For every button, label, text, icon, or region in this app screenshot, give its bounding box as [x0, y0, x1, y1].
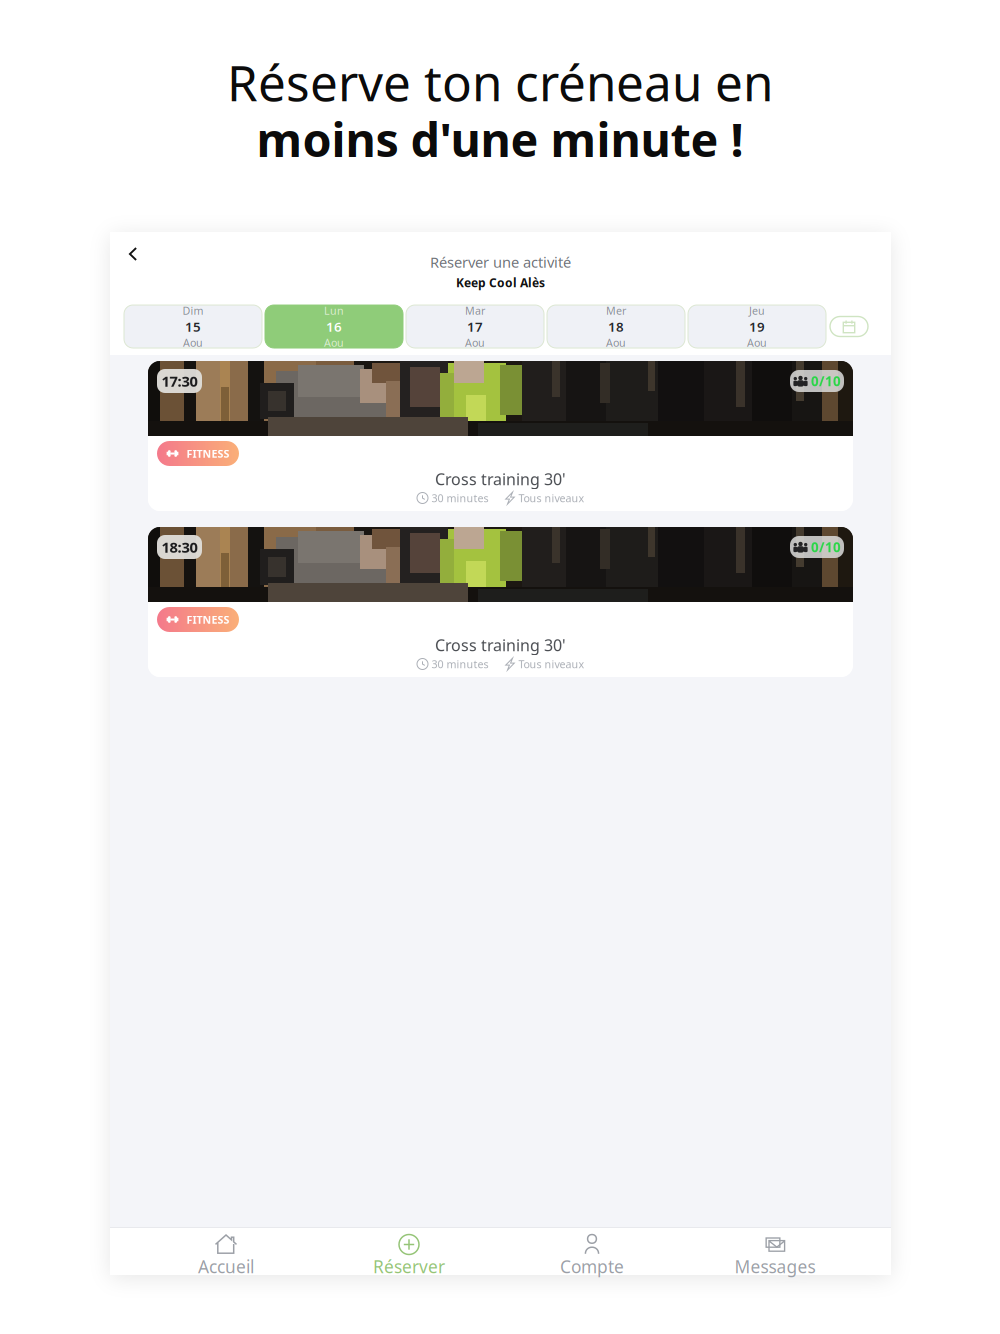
staticText: Aou: [465, 335, 485, 350]
button[interactable]: Dim: [124, 305, 262, 348]
button[interactable]: Back: [116, 237, 150, 271]
button[interactable]: Jeu: [688, 305, 826, 348]
staticText: Tous niveaux: [515, 657, 584, 671]
staticText: Cross training 30': [435, 468, 566, 490]
button[interactable]: Compte: [500, 1228, 683, 1275]
staticText: 17: [467, 318, 483, 335]
button[interactable]: Mer: [547, 305, 685, 348]
staticText: 0/10: [811, 538, 841, 556]
staticText: Lun: [324, 303, 344, 318]
staticText: Dim: [182, 303, 203, 318]
button[interactable]: Messages: [683, 1228, 866, 1275]
staticText: Mar: [465, 303, 485, 318]
staticText: 17:30: [161, 371, 197, 391]
staticText: 30 minutes: [428, 657, 488, 671]
button[interactable]: Réserver: [317, 1228, 500, 1275]
staticText: 15: [185, 318, 201, 335]
staticText: Tous niveaux: [515, 491, 584, 505]
staticText: Aou: [324, 335, 344, 350]
staticText: Réserve ton créneau en: [227, 49, 773, 115]
staticText: Keep Cool Alès: [456, 274, 545, 290]
staticText: Aou: [747, 335, 767, 350]
staticText: Accueil: [198, 1255, 254, 1278]
staticText: 30 minutes: [428, 491, 488, 505]
staticText: Jeu: [749, 303, 765, 318]
staticText: 18:30: [161, 537, 197, 557]
button[interactable]: Mar: [406, 305, 544, 348]
staticText: Réserver: [373, 1255, 445, 1278]
staticText: 19: [749, 318, 765, 335]
button[interactable]: 17:30: [148, 361, 853, 511]
staticText: Compte: [560, 1255, 624, 1278]
button[interactable]: 18:30: [148, 527, 853, 677]
staticText: 16: [326, 318, 342, 335]
staticText: Cross training 30': [435, 634, 566, 656]
button[interactable]: Lun: [265, 305, 403, 348]
staticText: Messages: [734, 1255, 815, 1278]
button[interactable]: Choose a date: [829, 315, 869, 337]
staticText: moins d'une minute !: [256, 108, 743, 170]
staticText: Aou: [183, 335, 203, 350]
staticText: Mer: [606, 303, 626, 318]
staticText: 18: [608, 318, 624, 335]
staticText: FITNESS: [186, 612, 229, 627]
staticText: Aou: [606, 335, 626, 350]
staticText: FITNESS: [186, 446, 229, 461]
staticText: 0/10: [811, 372, 841, 390]
staticText: Réserver une activité: [430, 252, 571, 272]
button[interactable]: Accueil: [134, 1228, 317, 1275]
